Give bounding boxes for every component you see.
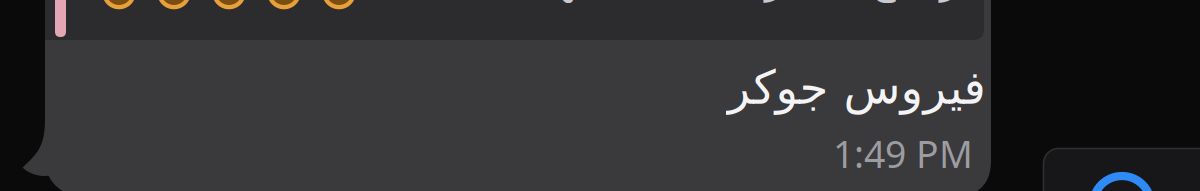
staticText: فيروس جوكر <box>727 61 985 114</box>
staticText: 1:49 PM <box>833 129 973 178</box>
staticText: هذا البرنامج خطير جدا على الهاتف <box>493 0 1062 2</box>
button[interactable]: Quoted message <box>0 0 1200 191</box>
button[interactable]: هذا البرنامج خطير جدا على الهاتف <box>0 0 1200 191</box>
button[interactable]: Next message <box>0 0 1200 191</box>
